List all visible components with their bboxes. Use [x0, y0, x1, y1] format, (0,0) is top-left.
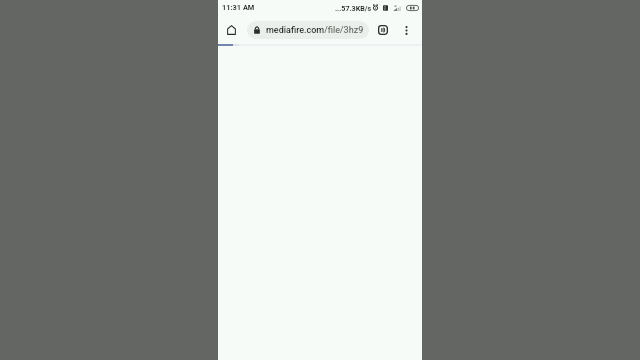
button[interactable]: mediafire.com/file/3hz9: [247, 21, 369, 39]
button[interactable]: Switch tabs: [373, 20, 393, 40]
button[interactable]: Home: [221, 19, 242, 40]
staticText: ...57.3KB/s: [335, 4, 372, 12]
staticText: mediafire.com/file/3hz9: [266, 25, 364, 36]
button[interactable]: More options: [396, 20, 416, 40]
staticText: 11:31 AM: [222, 3, 255, 12]
